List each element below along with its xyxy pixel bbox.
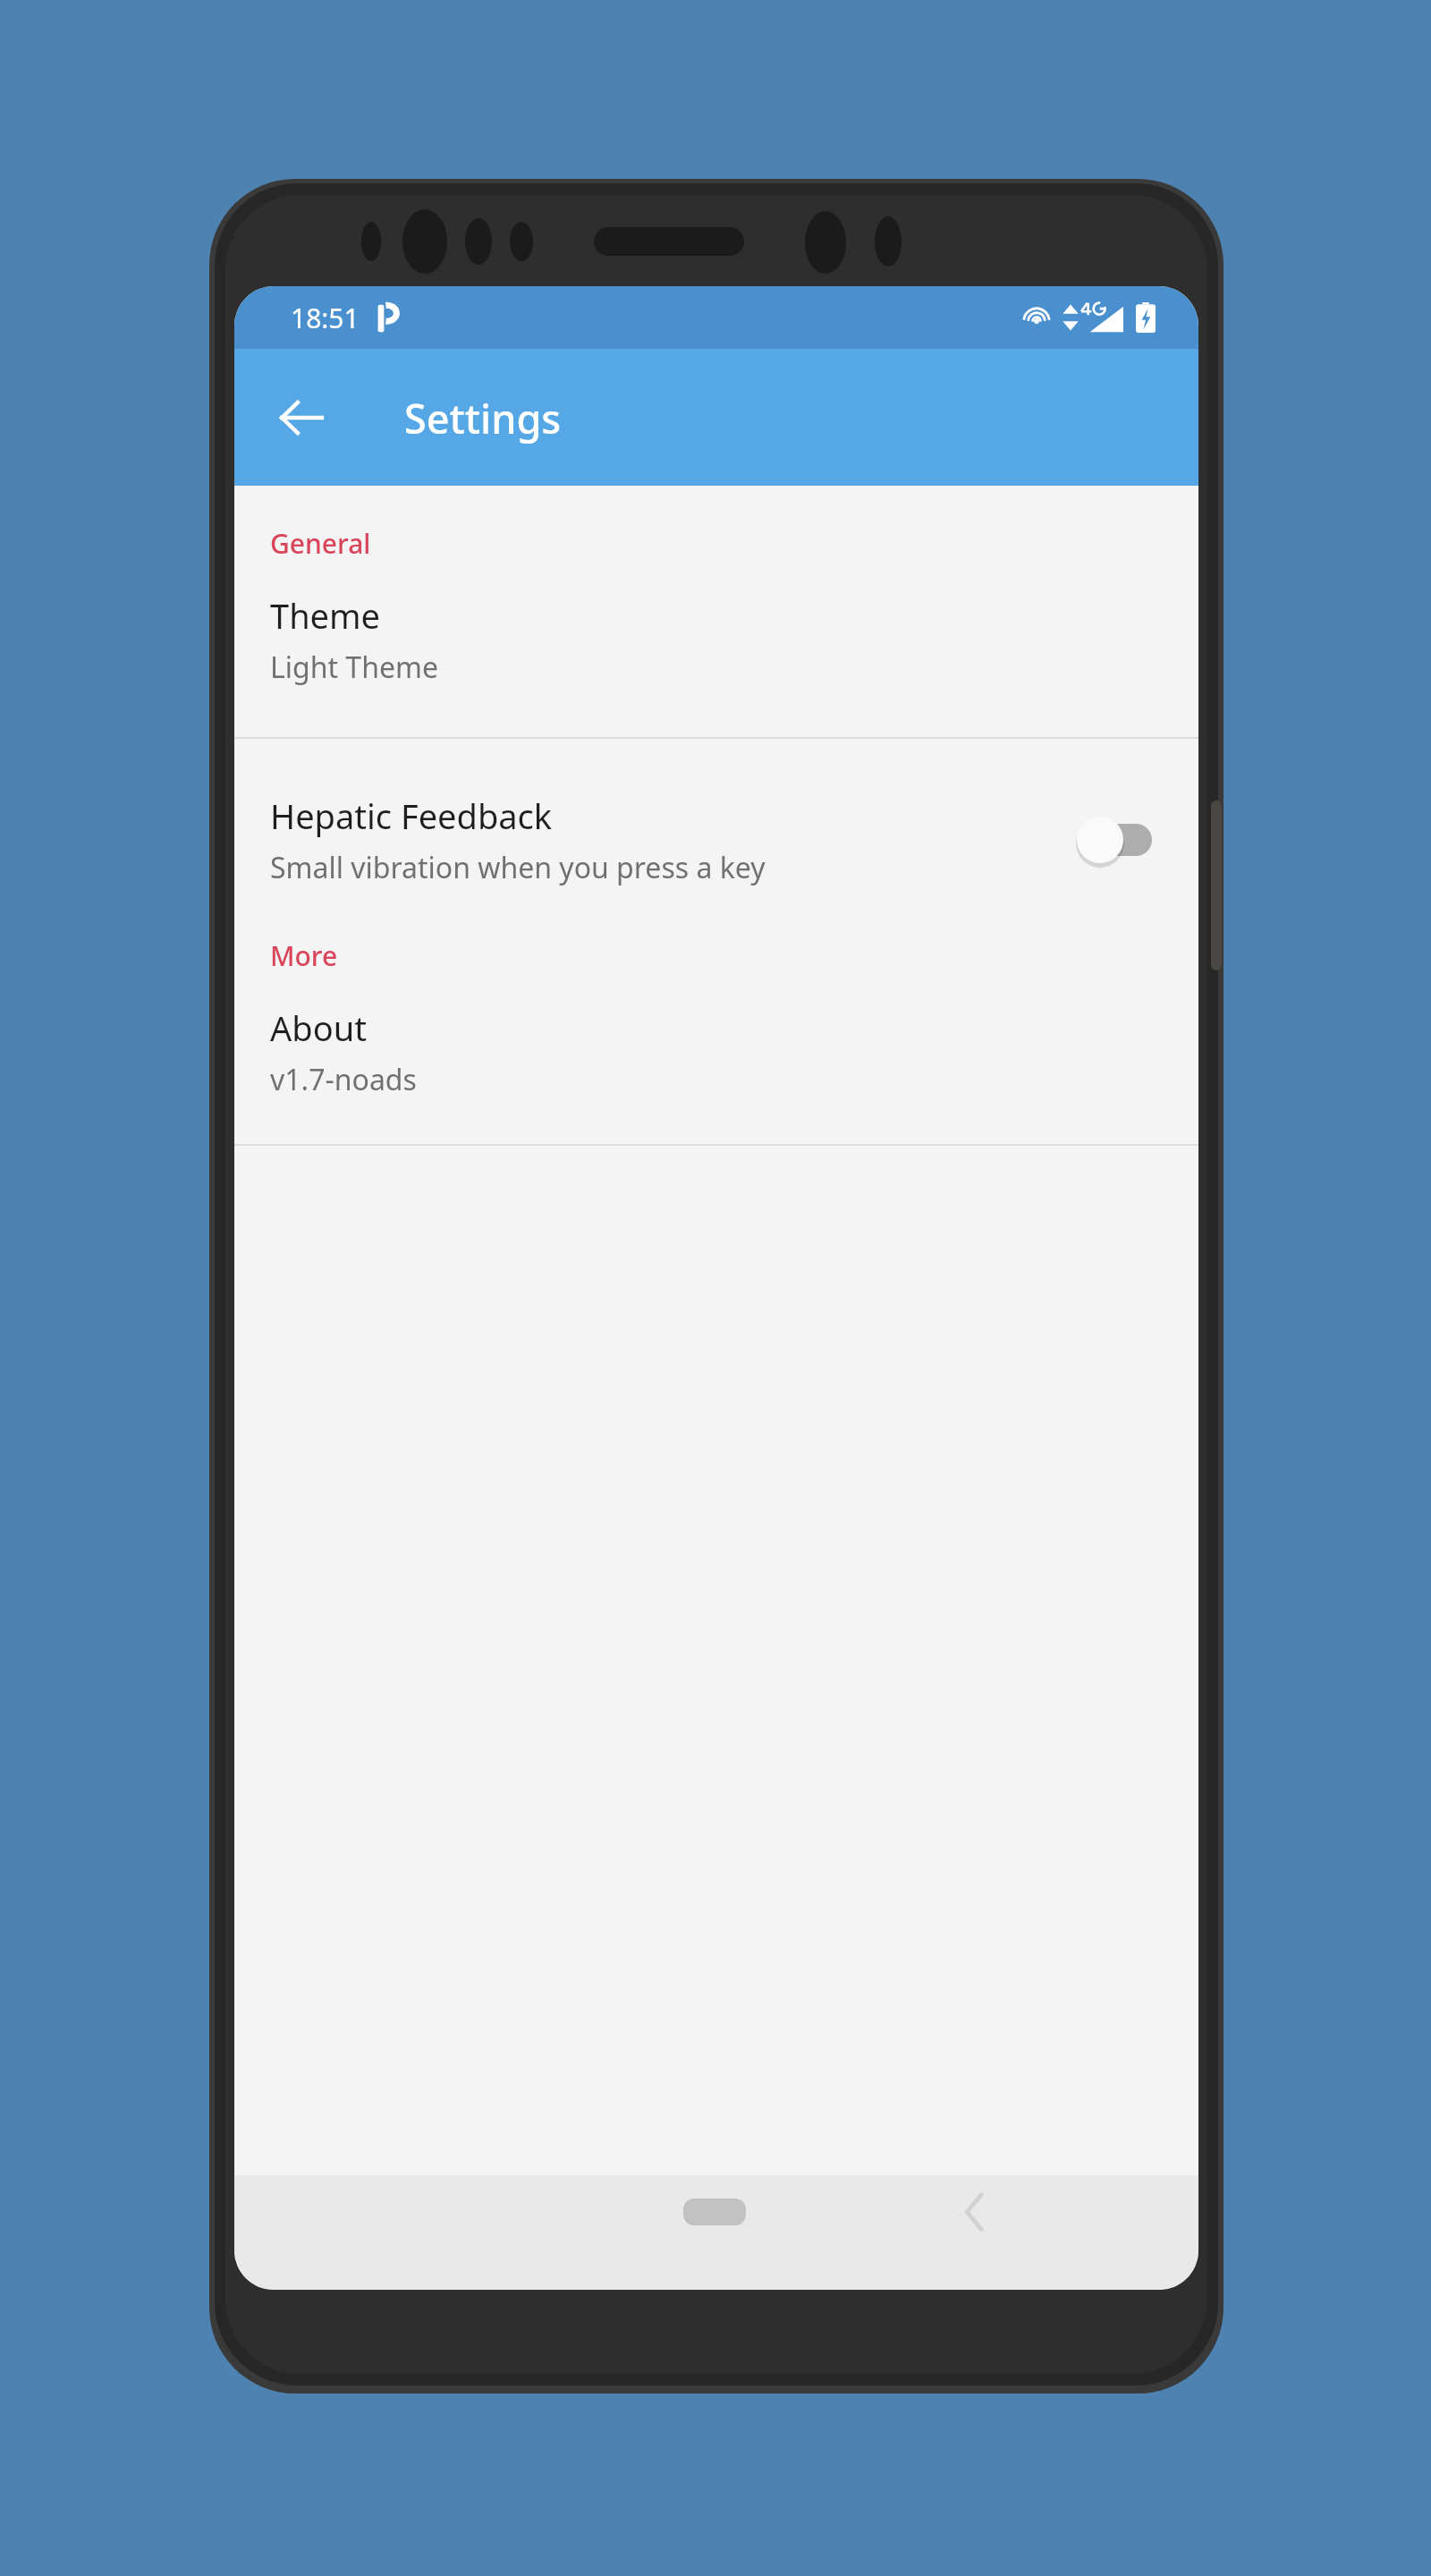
staticText: About bbox=[270, 1004, 367, 1051]
button[interactable]: Hepatic Feedback bbox=[234, 739, 1198, 896]
staticText: Small vibration when you press a key bbox=[270, 848, 766, 887]
button[interactable]: Back bbox=[932, 2184, 1018, 2240]
button[interactable]: Home bbox=[665, 2186, 764, 2238]
staticText: General bbox=[270, 525, 371, 562]
button[interactable]: Theme bbox=[234, 562, 1198, 737]
staticText: Settings bbox=[404, 391, 562, 445]
staticText: Light Theme bbox=[270, 648, 438, 687]
staticText: 18:51 bbox=[291, 300, 360, 336]
button[interactable]: Hepatic feedback toggle bbox=[1070, 811, 1163, 869]
staticText: More bbox=[270, 937, 338, 974]
button[interactable]: About bbox=[234, 974, 1198, 1144]
staticText: Theme bbox=[270, 592, 381, 639]
button[interactable]: Back bbox=[258, 375, 344, 461]
staticText: Hepatic Feedback bbox=[270, 792, 553, 839]
staticText: v1.7-noads bbox=[270, 1060, 417, 1099]
